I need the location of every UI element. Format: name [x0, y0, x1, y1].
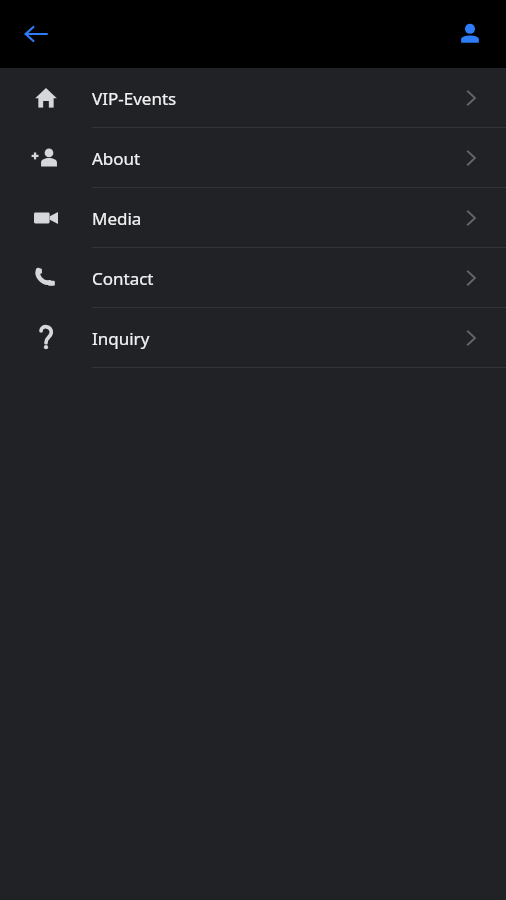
button[interactable]: Inquiry — [0, 308, 506, 368]
staticText: Contact — [92, 267, 154, 290]
staticText: About — [92, 147, 141, 170]
button[interactable]: VIP-Events — [0, 68, 506, 128]
button[interactable]: Account — [444, 8, 496, 60]
staticText: Inquiry — [92, 327, 150, 350]
button[interactable]: About — [0, 128, 506, 188]
button[interactable]: Contact — [0, 248, 506, 308]
staticText: Media — [92, 207, 142, 230]
button[interactable]: Back — [10, 8, 62, 60]
staticText: VIP-Events — [92, 87, 177, 110]
button[interactable]: Media — [0, 188, 506, 248]
